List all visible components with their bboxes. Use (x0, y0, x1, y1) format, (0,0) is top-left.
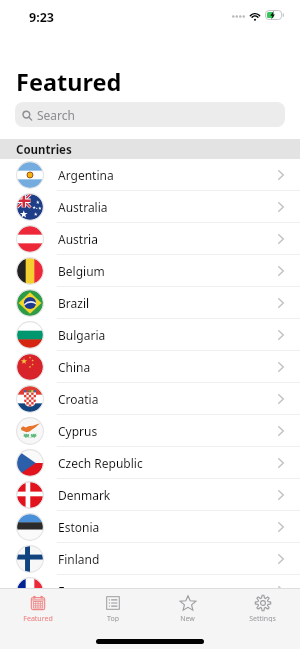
staticText: Denmark (58, 487, 111, 503)
staticText: Top (107, 614, 119, 622)
button[interactable]: Denmark (0, 479, 300, 511)
staticText: New (180, 614, 195, 622)
staticText: Austria (58, 231, 98, 247)
staticText: Belgium (58, 263, 105, 279)
staticText: Cyprus (58, 423, 98, 439)
button[interactable]: Brazil (0, 287, 300, 319)
staticText: Finland (58, 551, 100, 567)
staticText: Settings (249, 614, 276, 622)
staticText: France (58, 583, 96, 599)
staticText: Search (37, 107, 75, 123)
button[interactable]: Top (75, 589, 150, 622)
button[interactable]: Search (15, 102, 285, 127)
staticText: Countries (16, 142, 72, 158)
staticText: Estonia (58, 519, 100, 535)
button[interactable]: China (0, 351, 300, 383)
staticText: Argentina (58, 167, 114, 183)
button[interactable]: France (0, 575, 300, 607)
staticText: Featured (23, 614, 53, 622)
button[interactable]: Czech Republic (0, 447, 300, 479)
button[interactable]: Bulgaria (0, 319, 300, 351)
button[interactable]: New (150, 589, 225, 622)
button[interactable]: Finland (0, 543, 300, 575)
staticText: Australia (58, 199, 108, 215)
button[interactable]: Belgium (0, 255, 300, 287)
staticText: China (58, 359, 91, 375)
button[interactable]: Estonia (0, 511, 300, 543)
button[interactable]: Australia (0, 191, 300, 223)
staticText: Croatia (58, 391, 99, 407)
staticText: 9:23 (29, 9, 54, 26)
staticText: Czech Republic (58, 455, 143, 471)
button[interactable]: Featured (0, 589, 75, 622)
staticText: Featured (16, 66, 122, 98)
button[interactable]: Settings (225, 589, 300, 622)
button[interactable]: Croatia (0, 383, 300, 415)
button[interactable]: Cyprus (0, 415, 300, 447)
staticText: Bulgaria (58, 327, 106, 343)
button[interactable]: Argentina (0, 159, 300, 191)
staticText: Brazil (58, 295, 90, 311)
button[interactable]: Austria (0, 223, 300, 255)
